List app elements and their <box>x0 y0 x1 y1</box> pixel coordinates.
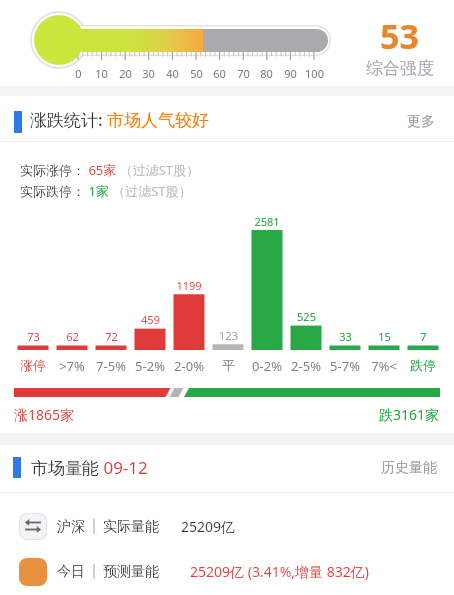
button[interactable]: 更多 <box>396 108 446 136</box>
staticText: 525 <box>297 309 316 324</box>
staticText: 53 <box>380 13 419 59</box>
staticText: 7-5% <box>96 357 126 375</box>
staticText: 实际跌停： 1家 （过滤ST股） <box>20 182 192 200</box>
staticText: 5-7% <box>330 357 360 375</box>
staticText: 72 <box>105 329 118 344</box>
staticText: >7% <box>59 357 85 375</box>
staticText: 综合强度 <box>366 58 434 79</box>
staticText: 30 <box>142 66 155 81</box>
staticText: 涨跌统计: 市场人气较好 <box>30 108 210 131</box>
staticText: 历史量能 <box>381 459 437 477</box>
staticText: 62 <box>66 329 79 344</box>
staticText: 33 <box>339 329 352 344</box>
staticText: 涨停 <box>20 357 46 373</box>
staticText: 123 <box>219 328 238 343</box>
staticText: 459 <box>141 312 160 327</box>
staticText: 涨1865家 <box>14 405 75 424</box>
staticText: 2-5% <box>291 357 321 375</box>
staticText: 预测量能 <box>103 563 159 581</box>
staticText: 73 <box>27 329 40 344</box>
button[interactable]: 沪深 <box>0 508 454 545</box>
button[interactable]: 今日 <box>0 553 454 590</box>
staticText: 7 <box>420 329 427 344</box>
staticText: 25209亿 <box>181 517 236 536</box>
staticText: 50 <box>190 66 203 81</box>
button[interactable]: 历史量能 <box>374 455 444 481</box>
staticText: 15 <box>378 329 391 344</box>
staticText: 0 <box>75 66 82 81</box>
staticText: 市场量能 09-12 <box>31 456 148 479</box>
staticText: 实际量能 <box>103 518 159 536</box>
staticText: 10 <box>95 66 108 81</box>
staticText: 跌3161家 <box>379 405 440 424</box>
staticText: 平 <box>222 357 235 373</box>
staticText: 今日 <box>57 563 85 581</box>
staticText: 7%< <box>371 357 397 375</box>
staticText: 20 <box>119 66 132 81</box>
staticText: 0-2% <box>252 357 282 375</box>
staticText: 1199 <box>176 278 202 293</box>
staticText: 60 <box>213 66 226 81</box>
staticText: 2581 <box>254 214 280 229</box>
staticText: 25209亿 (3.41%,增量 832亿) <box>190 562 369 581</box>
staticText: 90 <box>284 66 297 81</box>
staticText: 100 <box>305 66 324 81</box>
staticText: 70 <box>237 66 250 81</box>
staticText: 40 <box>166 66 179 81</box>
staticText: 沪深 <box>57 518 85 536</box>
staticText: 2-0% <box>174 357 204 375</box>
staticText: 跌停 <box>410 357 436 373</box>
staticText: 5-2% <box>135 357 165 375</box>
staticText: 更多 <box>407 113 435 131</box>
staticText: 80 <box>260 66 273 81</box>
staticText: 实际涨停： 65家 （过滤ST股） <box>20 161 199 179</box>
